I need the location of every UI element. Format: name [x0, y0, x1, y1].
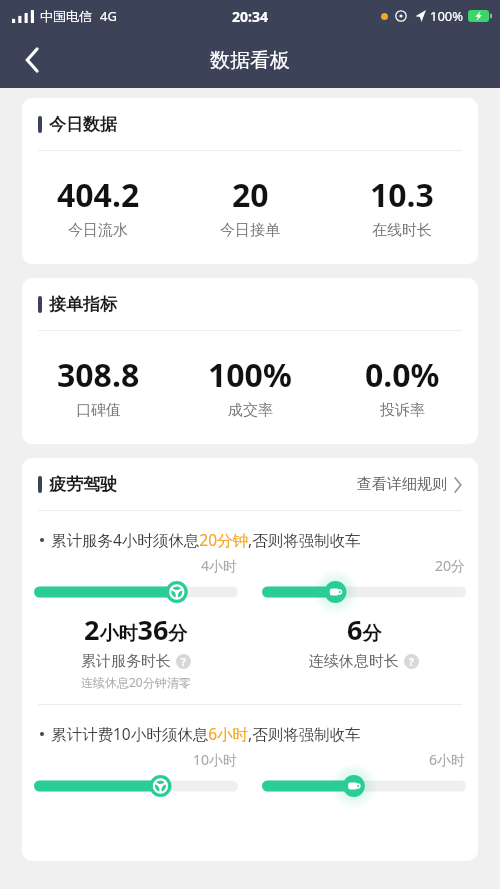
staticText: 累计服务4小时须休息20分钟,否则将强制收车	[51, 529, 361, 550]
staticText: 查看详细规则	[357, 475, 447, 494]
staticText: 今日接单	[220, 221, 280, 240]
staticText: 疲劳驾驶	[49, 474, 117, 495]
staticText: 投诉率	[380, 401, 425, 420]
staticText: 100%	[208, 353, 292, 397]
staticText: 累计服务时长	[81, 652, 171, 671]
staticText: 308.8	[57, 353, 140, 397]
staticText: 10.3	[370, 173, 434, 217]
staticText: 今日流水	[68, 221, 128, 240]
staticText: 成交率	[228, 401, 273, 420]
staticText: 累计计费10小时须休息6小时,否则将强制收车	[51, 723, 361, 744]
staticText: 20	[232, 173, 269, 217]
staticText: 20:34	[232, 7, 268, 26]
staticText: ?	[181, 655, 186, 669]
staticText: 口碑值	[76, 401, 121, 420]
staticText: 今日数据	[49, 114, 117, 135]
staticText: 6小时	[429, 750, 466, 769]
staticText: 100%	[430, 7, 464, 25]
staticText: 连续休息时长	[309, 652, 399, 671]
button[interactable]: 帮助	[404, 654, 419, 669]
button[interactable]: 查看详细规则	[357, 475, 462, 494]
staticText: 接单指标	[49, 294, 117, 315]
staticText: 4G	[100, 7, 117, 25]
button[interactable]: Back	[8, 36, 56, 84]
staticText: 中国电信	[40, 8, 92, 24]
staticText: 连续休息20分钟清零	[81, 674, 191, 690]
button[interactable]: 帮助	[176, 654, 191, 669]
staticText: 6分	[347, 611, 382, 648]
staticText: 数据看板	[210, 48, 290, 73]
staticText: 0.0%	[365, 353, 440, 397]
staticText: 10小时	[193, 750, 238, 769]
staticText: 在线时长	[372, 221, 432, 240]
staticText: ?	[409, 655, 414, 669]
staticText: 4小时	[201, 556, 238, 575]
staticText: 2小时36分	[84, 611, 188, 648]
staticText: 404.2	[57, 173, 140, 217]
staticText: 20分	[435, 556, 466, 575]
